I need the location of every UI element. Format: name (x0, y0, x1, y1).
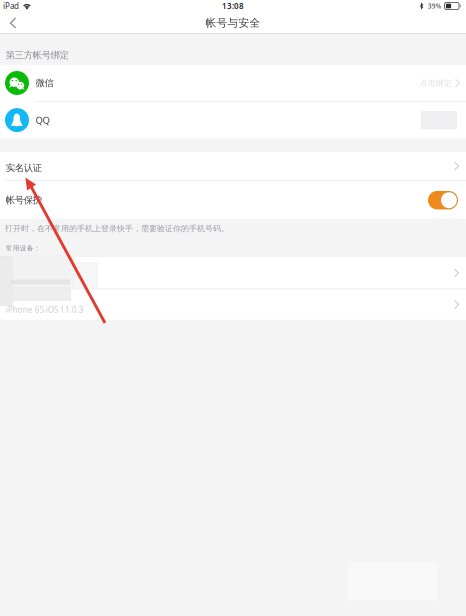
button[interactable]: QQ (0, 102, 466, 139)
button[interactable] (0, 257, 466, 289)
button[interactable]: 实名认证 (0, 152, 466, 181)
staticText: 打开时，在不常用的手机上登录快手，需要验证你的手机号码。 (5, 224, 229, 233)
staticText: iPhone 6S iOS 11.0.3 (6, 304, 84, 315)
staticText: 帐号保护 (6, 194, 42, 206)
staticText: 微信 (35, 77, 53, 89)
staticText: 39% (428, 2, 442, 10)
staticText: iPad (3, 1, 19, 11)
button[interactable]: 帐号保护 (0, 181, 466, 219)
staticText: 第三方帐号绑定 (6, 49, 69, 61)
staticText: 常用设备： (6, 244, 41, 252)
staticText: 13:08 (222, 1, 244, 11)
staticText: 点击绑定 (420, 78, 452, 88)
staticText: 实名认证 (6, 162, 42, 174)
staticText: 帐号与安全 (205, 16, 260, 29)
button[interactable]: 微信 (0, 65, 466, 101)
button[interactable]: 返回 (0, 13, 28, 33)
staticText: QQ (35, 114, 49, 126)
button[interactable]: iPhone 6S iOS 11.0.3 (0, 289, 466, 320)
